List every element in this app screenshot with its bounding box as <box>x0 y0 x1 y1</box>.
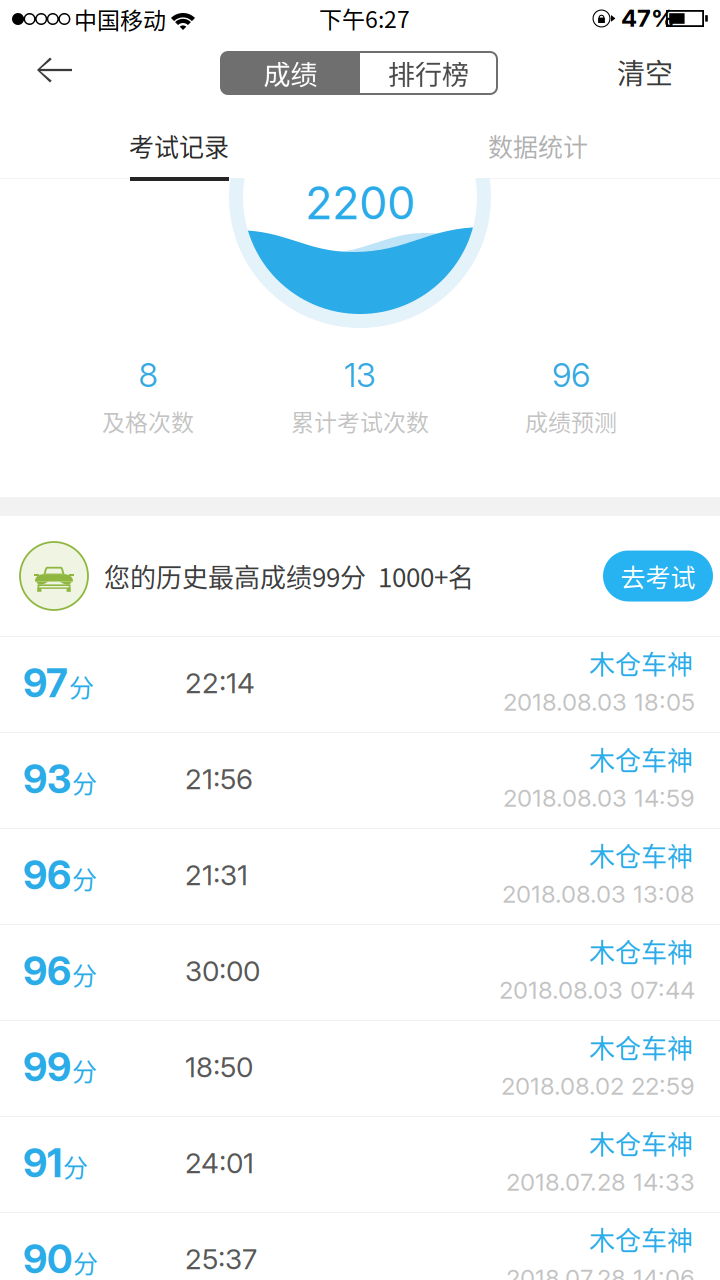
button[interactable]: 96 <box>0 924 720 1020</box>
button[interactable]: 数据统计 <box>358 107 718 183</box>
staticText: 分 <box>63 1148 88 1184</box>
staticText: 分 <box>73 1244 98 1280</box>
button[interactable]: 成绩 <box>221 52 360 94</box>
staticText: 96 <box>552 355 590 395</box>
staticText: 24:01 <box>185 1146 254 1180</box>
staticText: 分 <box>69 668 94 704</box>
staticText: 成绩 <box>263 53 317 93</box>
staticText: 2018.08.03 07:44 <box>499 975 695 1004</box>
button[interactable]: 90 <box>0 1212 720 1280</box>
button[interactable]: 排行榜 <box>360 52 497 94</box>
staticText: 木仓车神 <box>589 836 693 874</box>
staticText: 累计考试次数 <box>291 404 429 438</box>
staticText: 及格次数 <box>102 404 194 438</box>
staticText: 2018.08.03 18:05 <box>503 687 695 716</box>
staticText: 93 <box>23 755 71 803</box>
staticText: 清空 <box>617 52 673 92</box>
staticText: 13 <box>344 355 376 395</box>
staticText: 2018.07.28 14:06 <box>506 1263 695 1280</box>
button[interactable]: 97 <box>0 636 720 732</box>
button[interactable]: 去考试 <box>603 550 713 601</box>
staticText: 18:50 <box>185 1050 253 1084</box>
staticText: 数据统计 <box>488 127 588 164</box>
staticText: 木仓车神 <box>589 644 693 682</box>
staticText: 成绩预测 <box>525 404 617 438</box>
staticText: 91 <box>23 1139 62 1187</box>
button[interactable]: 考试记录 <box>0 107 359 183</box>
staticText: 2018.08.02 22:59 <box>501 1071 695 1100</box>
staticText: 分 <box>72 1052 97 1088</box>
staticText: 木仓车神 <box>589 740 693 778</box>
staticText: 木仓车神 <box>589 1220 693 1258</box>
staticText: 2018.07.28 14:33 <box>506 1167 695 1196</box>
staticText: 2018.08.03 13:08 <box>502 879 695 908</box>
staticText: 排行榜 <box>388 53 469 93</box>
staticText: 30:00 <box>185 954 260 988</box>
staticText: 木仓车神 <box>589 932 693 970</box>
staticText: 2018.08.03 14:59 <box>503 783 695 812</box>
staticText: 分 <box>72 860 97 896</box>
staticText: 90 <box>23 1235 72 1280</box>
button[interactable]: 清空 <box>585 43 705 101</box>
staticText: 21:31 <box>185 858 248 892</box>
staticText: 下午6:27 <box>319 1 410 35</box>
button[interactable]: 96 <box>0 828 720 924</box>
staticText: 木仓车神 <box>589 1124 693 1162</box>
staticText: 2200 <box>305 176 415 230</box>
staticText: 中国移动 <box>74 2 166 36</box>
staticText: 25:37 <box>185 1242 257 1276</box>
button[interactable]: Back <box>1 41 107 99</box>
button[interactable]: 93 <box>0 732 720 828</box>
staticText: 去考试 <box>620 558 695 594</box>
staticText: 96 <box>23 851 71 899</box>
staticText: 木仓车神 <box>589 1028 693 1066</box>
button[interactable]: 99 <box>0 1020 720 1116</box>
staticText: 47% <box>621 3 675 32</box>
staticText: 97 <box>23 659 68 707</box>
staticText: 8 <box>138 355 157 395</box>
button[interactable]: 91 <box>0 1116 720 1212</box>
staticText: 21:56 <box>185 762 253 796</box>
staticText: 您的历史最高成绩99分 1000+名 <box>104 557 474 595</box>
staticText: 96 <box>23 947 71 995</box>
staticText: 分 <box>72 764 97 800</box>
staticText: 22:14 <box>185 666 255 700</box>
staticText: 99 <box>23 1043 71 1091</box>
staticText: 考试记录 <box>129 127 229 164</box>
staticText: 分 <box>72 956 97 992</box>
